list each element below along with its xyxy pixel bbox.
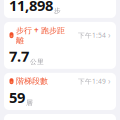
staticText: 59 [9,87,25,107]
staticText: 層 [26,99,33,107]
staticText: › [108,76,111,86]
staticText: 公里 [30,58,44,66]
button[interactable]: 步行 + 跑步距離 [4,22,116,69]
staticText: 步行 + 跑步距離 [16,25,65,45]
staticText: 階梯段數 [16,76,48,86]
button[interactable]: 階梯段數 [4,73,116,110]
staticText: › [108,30,111,40]
staticText: 11,898 [9,0,53,15]
staticText: 下午1:49 [78,77,106,86]
staticText: 步 [54,7,61,15]
button[interactable]: 步行 [4,0,116,18]
staticText: 7.7 [9,46,29,66]
staticText: 下午1:54 [78,31,106,40]
